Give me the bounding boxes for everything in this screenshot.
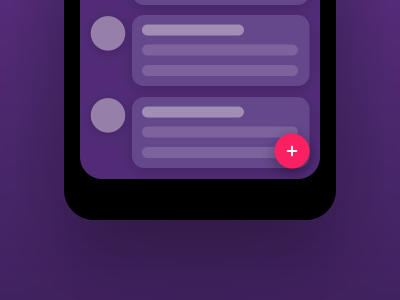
- button[interactable]: List item: [91, 97, 310, 168]
- button[interactable]: List item: [91, 15, 310, 86]
- button[interactable]: Add: [274, 133, 309, 168]
- button[interactable]: List item: [91, 0, 310, 5]
